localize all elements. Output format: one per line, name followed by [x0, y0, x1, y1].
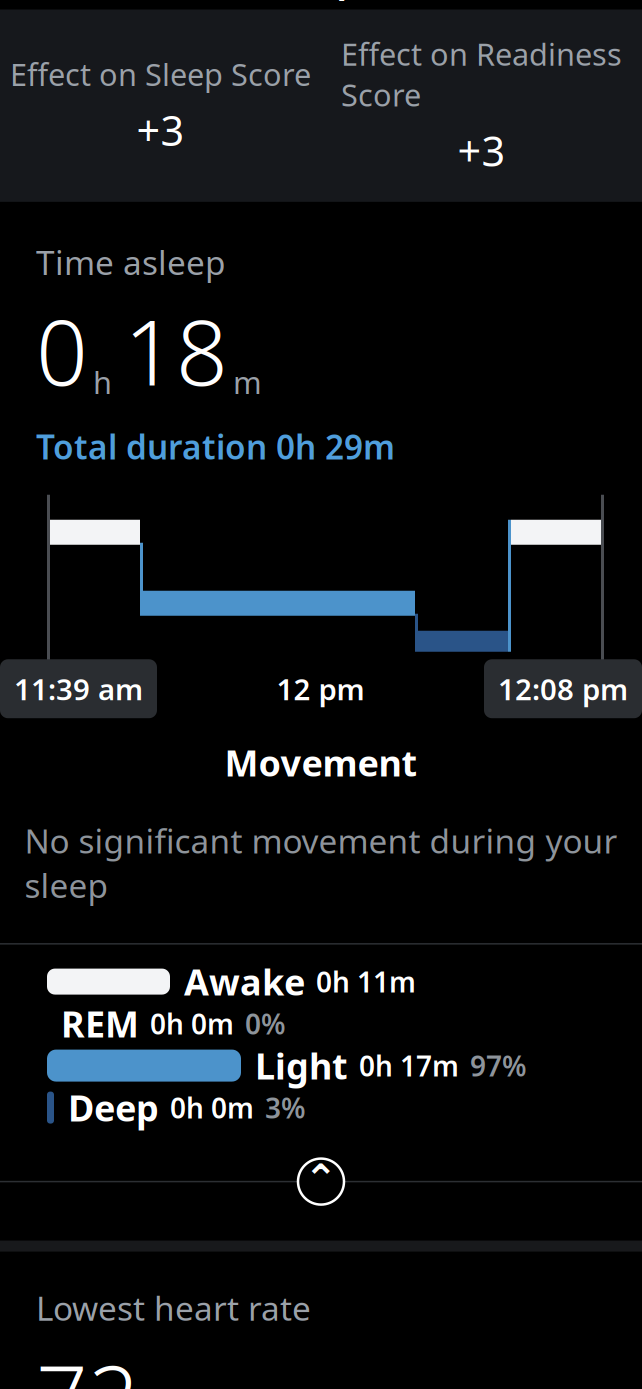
- staticText: Lowest heart rate: [36, 1286, 311, 1330]
- staticText: Effect on Readiness Score: [341, 33, 622, 115]
- staticText: Effect on Sleep Score: [10, 54, 311, 94]
- staticText: 11:39 am: [14, 669, 143, 708]
- staticText: m: [233, 362, 262, 402]
- staticText: Time asleep: [36, 240, 226, 284]
- button[interactable]: Collapse sleep stages: [288, 1149, 354, 1215]
- staticText: 18: [124, 290, 228, 410]
- staticText: +3: [136, 103, 184, 157]
- staticText: Total duration 0h 29m: [36, 424, 395, 469]
- staticText: 97%: [470, 1047, 527, 1084]
- staticText: REM: [61, 1000, 139, 1047]
- staticText: 0: [36, 290, 88, 410]
- staticText: 0h 0m: [170, 1089, 254, 1126]
- staticText: 0%: [245, 1005, 286, 1042]
- staticText: 0h 0m: [150, 1005, 234, 1042]
- staticText: 0h 17m: [359, 1047, 459, 1084]
- staticText: Light: [255, 1042, 348, 1089]
- staticText: 12:08 pm: [498, 669, 628, 708]
- staticText: Nap: [281, 0, 361, 2]
- staticText: ⌃: [304, 1156, 338, 1201]
- staticText: Movement: [224, 739, 417, 787]
- staticText: 3%: [265, 1089, 306, 1126]
- staticText: +3: [457, 123, 505, 178]
- staticText: Awake: [184, 958, 305, 1005]
- button[interactable]: Total duration 0h 29m: [36, 424, 395, 469]
- staticText: h: [93, 362, 112, 402]
- staticText: 72: [36, 1336, 140, 1389]
- staticText: No significant movement during your slee…: [24, 819, 617, 907]
- staticText: Deep: [68, 1084, 159, 1131]
- staticText: 12 pm: [276, 669, 364, 708]
- staticText: 0h 11m: [316, 963, 416, 1000]
